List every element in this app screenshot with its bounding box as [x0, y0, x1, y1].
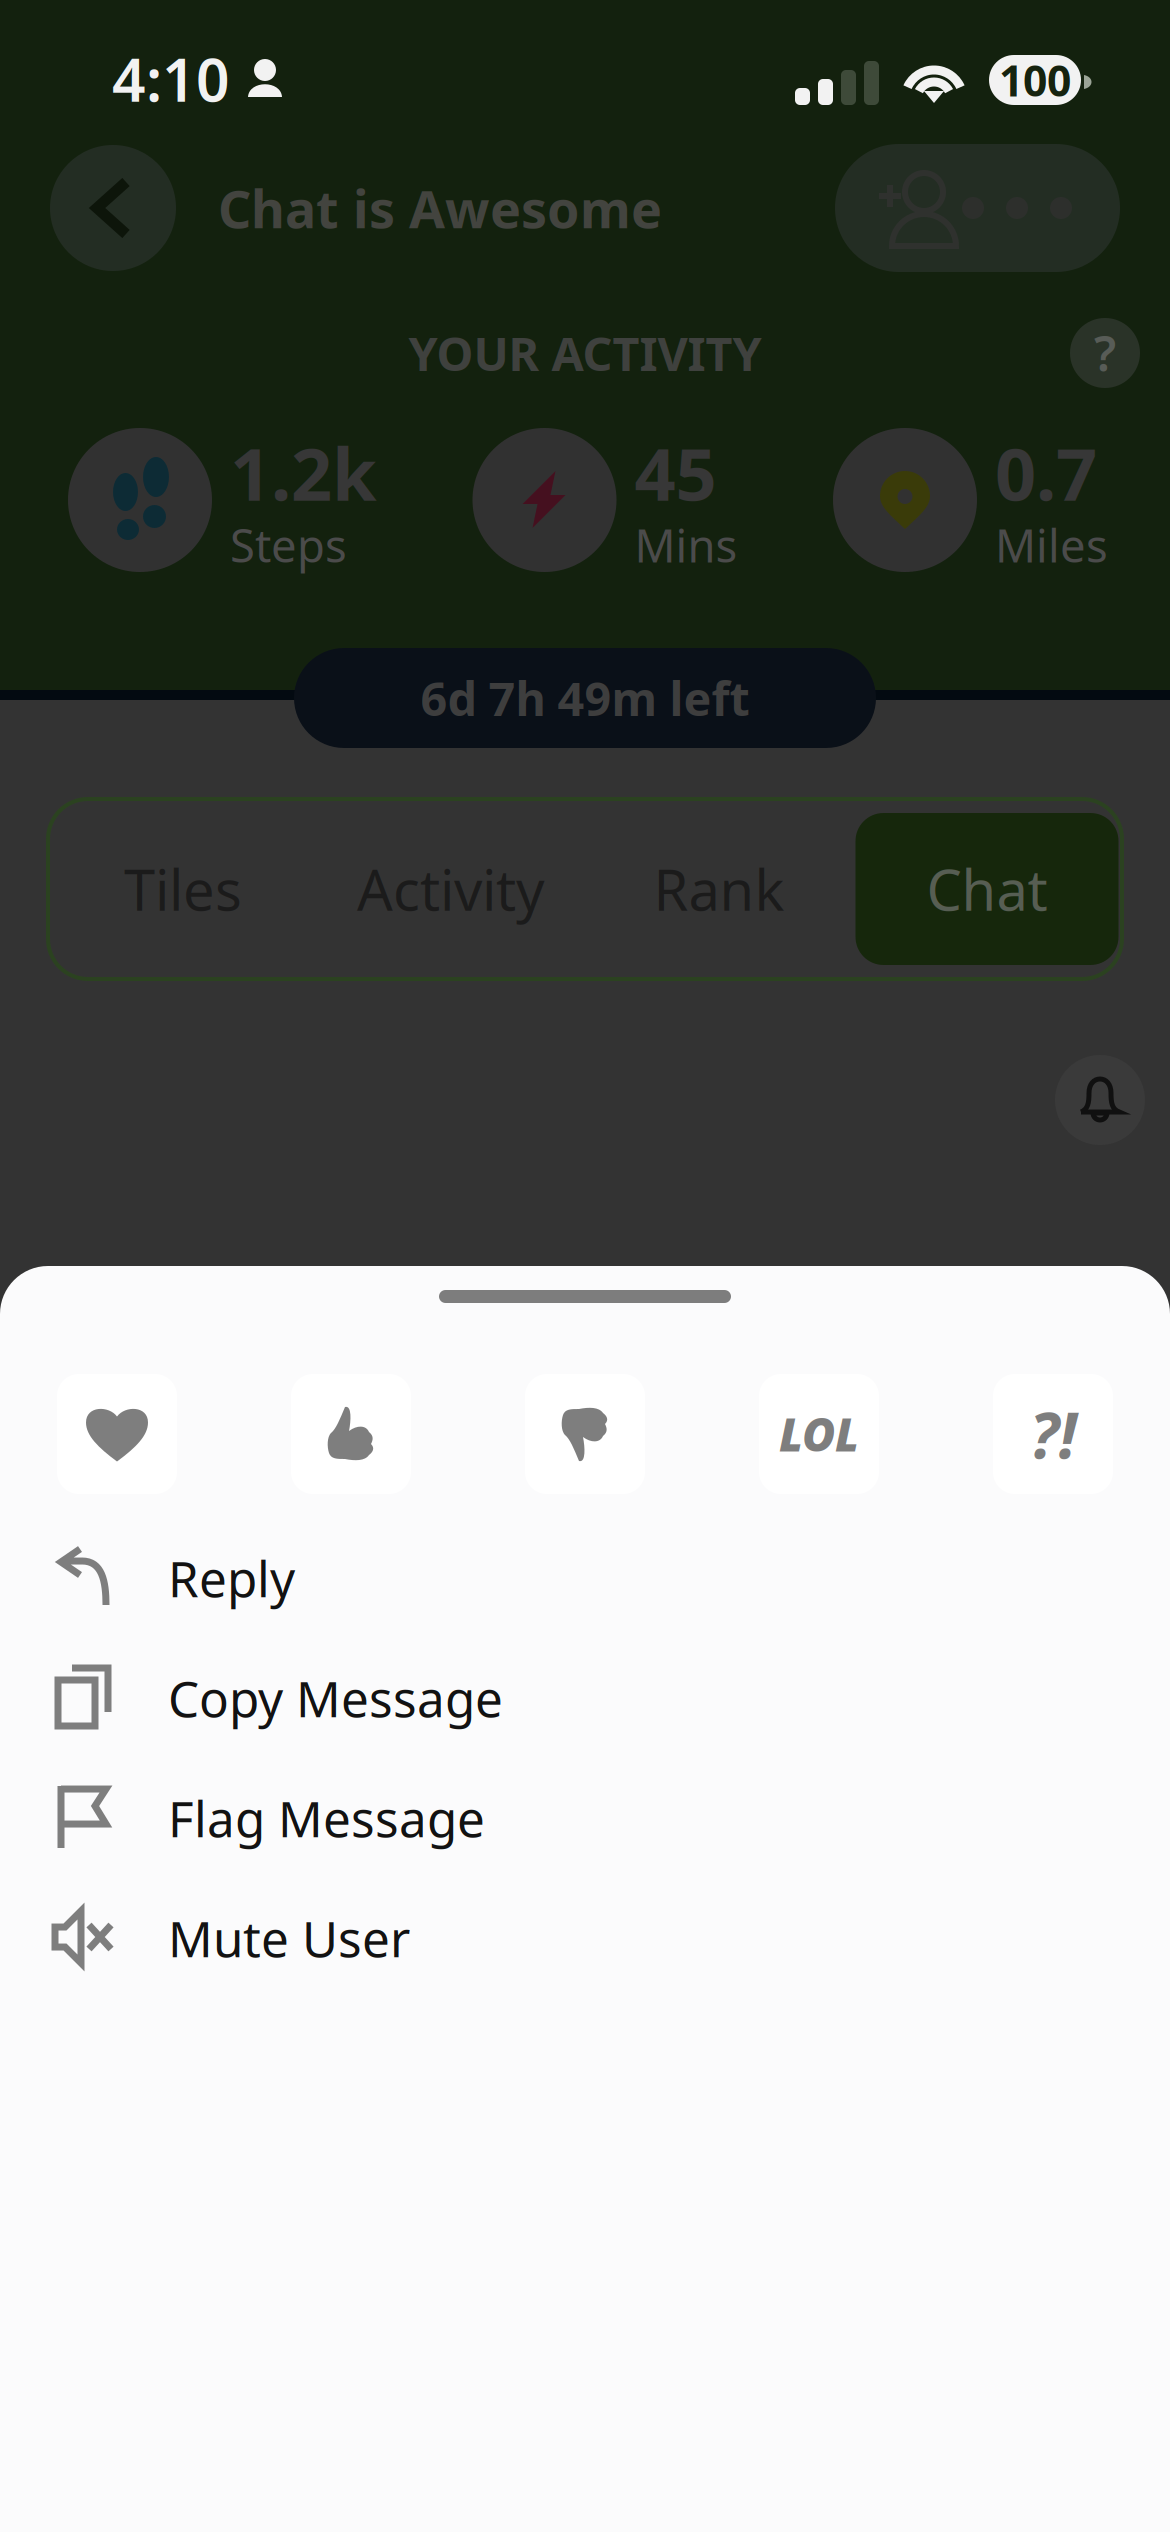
staticText: Steps: [230, 515, 347, 575]
button[interactable]: Mute User: [0, 1878, 1170, 1998]
button[interactable]: Thumbs down: [525, 1374, 645, 1494]
button[interactable]: Notifications: [1055, 1055, 1145, 1145]
button[interactable]: Help: [1070, 318, 1140, 388]
staticText: 0.7: [995, 425, 1097, 521]
button[interactable]: Wow: [993, 1374, 1113, 1494]
button[interactable]: Reply: [0, 1518, 1170, 1638]
button[interactable]: Love: [57, 1374, 177, 1494]
button[interactable]: Activity: [317, 799, 585, 979]
button[interactable]: Copy Message: [0, 1638, 1170, 1758]
staticText: Miles: [995, 515, 1108, 575]
button[interactable]: Flag Message: [0, 1758, 1170, 1878]
staticText: Chat: [926, 852, 1047, 926]
button[interactable]: Group options: [835, 144, 1120, 272]
staticText: LOL: [779, 1404, 859, 1464]
button[interactable]: LOL: [759, 1374, 879, 1494]
staticText: Rank: [653, 852, 784, 926]
staticText: 6d 7h 49m left: [420, 667, 749, 729]
staticText: Chat is Awesome: [218, 173, 662, 243]
staticText: 4:10: [112, 40, 230, 118]
staticText: 100: [999, 52, 1071, 108]
staticText: Tiles: [124, 852, 242, 926]
staticText: 1.2k: [230, 425, 377, 521]
staticText: YOUR ACTIVITY: [408, 322, 761, 384]
staticText: 45: [634, 425, 716, 521]
button[interactable]: Chat: [853, 799, 1121, 979]
staticText: ?!: [1029, 1391, 1076, 1476]
staticText: Mute User: [168, 1905, 410, 1971]
staticText: Mins: [634, 515, 737, 575]
button[interactable]: Thumbs up: [291, 1374, 411, 1494]
staticText: Activity: [357, 852, 545, 926]
staticText: Flag Message: [168, 1785, 485, 1851]
button[interactable]: Back: [50, 145, 176, 271]
button[interactable]: Tiles: [49, 799, 317, 979]
staticText: Reply: [168, 1545, 295, 1611]
staticText: ?: [1094, 321, 1116, 385]
staticText: Copy Message: [168, 1665, 503, 1731]
button[interactable]: Rank: [585, 799, 853, 979]
